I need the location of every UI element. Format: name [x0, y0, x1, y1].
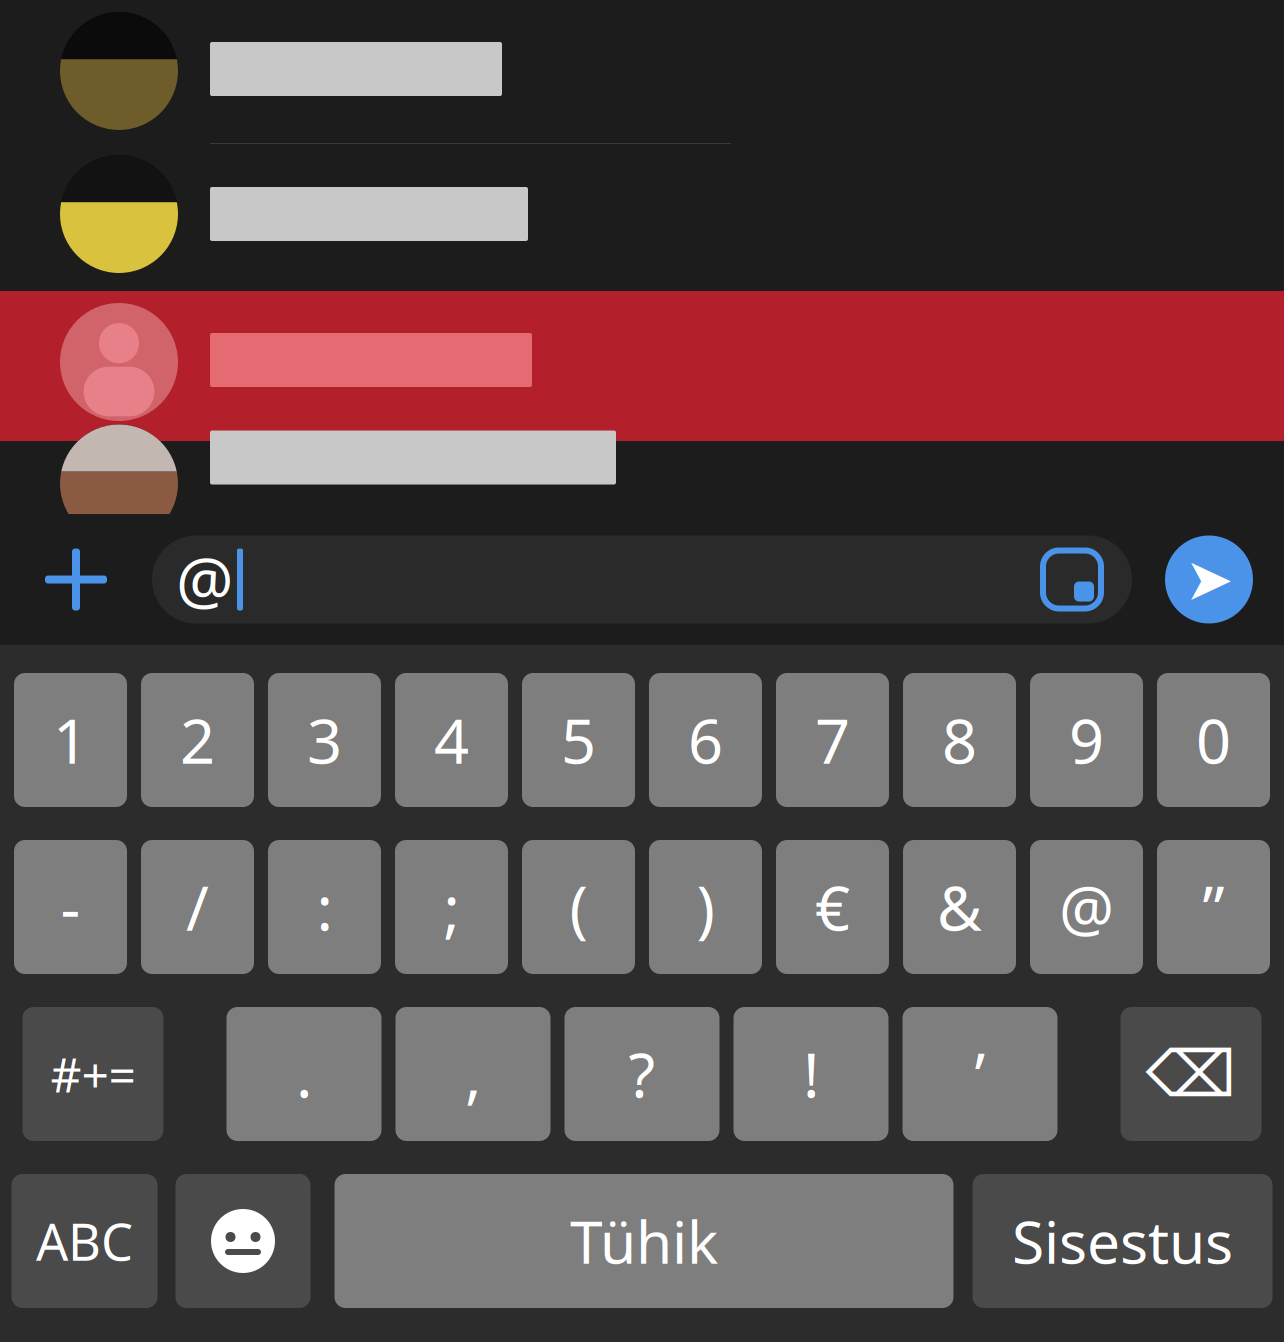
button[interactable]: 3 [268, 673, 381, 807]
staticText: 9 [1069, 699, 1104, 781]
button[interactable] [0, 0, 1284, 143]
button[interactable]: ) [649, 840, 762, 974]
staticText: 4 [434, 699, 469, 781]
staticText: 2 [180, 699, 215, 781]
staticText: ” [1202, 866, 1224, 948]
staticText: ; [443, 866, 459, 948]
staticText: ! [803, 1033, 819, 1115]
button[interactable]: . [226, 1007, 381, 1141]
button[interactable]: & [903, 840, 1016, 974]
button[interactable]: #+= [22, 1007, 163, 1141]
button[interactable]: 5 [522, 673, 635, 807]
staticText: ) [696, 866, 714, 948]
button[interactable]: 9 [1030, 673, 1143, 807]
button[interactable]: 7 [776, 673, 889, 807]
button[interactable]: 2 [141, 673, 254, 807]
staticText: 3 [307, 699, 342, 781]
staticText: : [316, 866, 332, 948]
staticText: 6 [688, 699, 723, 781]
staticText: 7 [815, 699, 850, 781]
button[interactable]: , [395, 1007, 550, 1141]
button[interactable]: ; [395, 840, 508, 974]
staticText: #+= [50, 1042, 135, 1106]
button[interactable]: / [141, 840, 254, 974]
staticText: @ [1059, 866, 1114, 948]
staticText: Sisestus [1012, 1202, 1233, 1280]
staticText: € [815, 866, 850, 948]
staticText: ABC [36, 1207, 133, 1275]
staticText: & [937, 866, 982, 948]
staticText: ? [628, 1033, 655, 1115]
button[interactable]: Emoji [175, 1174, 310, 1308]
button[interactable]: Send [1165, 535, 1253, 623]
button[interactable]: - [14, 840, 127, 974]
button[interactable]: ’ [902, 1007, 1057, 1141]
staticText: 8 [942, 699, 977, 781]
button[interactable]: 6 [649, 673, 762, 807]
staticText: ( [569, 866, 587, 948]
staticText: ⌫ [1145, 1038, 1236, 1110]
button[interactable] [0, 441, 1284, 514]
button[interactable]: ABC [11, 1174, 157, 1308]
staticText: 0 [1196, 699, 1231, 781]
staticText: ➤ [1184, 546, 1233, 613]
button[interactable]: 8 [903, 673, 1016, 807]
button[interactable]: Tühik [334, 1174, 953, 1308]
staticText: 5 [561, 699, 596, 781]
staticText: @ [176, 537, 234, 622]
staticText: ’ [974, 1033, 985, 1115]
button[interactable] [0, 291, 1284, 441]
button[interactable]: @ [1030, 840, 1143, 974]
button[interactable] [0, 143, 1284, 291]
button[interactable]: 0 [1157, 673, 1270, 807]
button[interactable]: 4 [395, 673, 508, 807]
button[interactable]: ! [733, 1007, 888, 1141]
staticText: , [465, 1033, 481, 1115]
staticText: 1 [53, 699, 88, 781]
button[interactable]: : [268, 840, 381, 974]
staticText: . [296, 1033, 312, 1115]
staticText: - [60, 866, 80, 948]
button[interactable]: ( [522, 840, 635, 974]
button[interactable]: € [776, 840, 889, 974]
button[interactable]: Stickers [1024, 531, 1120, 627]
button[interactable]: Sisestus [972, 1174, 1272, 1308]
button[interactable]: Attach [0, 514, 152, 645]
button[interactable]: Delete [1120, 1007, 1261, 1141]
staticText: / [186, 866, 209, 948]
button[interactable]: 1 [14, 673, 127, 807]
button[interactable]: ? [564, 1007, 719, 1141]
staticText: Tühik [570, 1202, 718, 1280]
button[interactable]: ” [1157, 840, 1270, 974]
